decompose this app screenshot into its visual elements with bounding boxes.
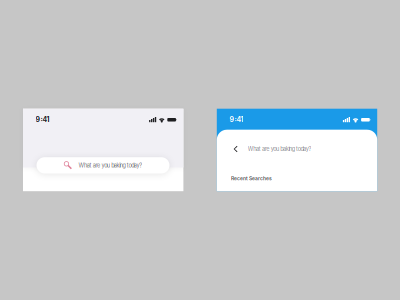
staticText: 9:41 [36,115,50,124]
staticText: Recent Searches [231,175,272,181]
button[interactable]: What are you baking today? [217,142,377,156]
staticText: What are you baking today? [78,162,142,169]
button[interactable]: Recent Searches [217,173,377,184]
staticText: 9:41 [229,115,243,124]
staticText: What are you baking today? [248,146,311,152]
button[interactable]: What are you baking today? [36,157,169,173]
